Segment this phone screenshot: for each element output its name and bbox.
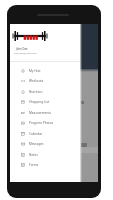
- button[interactable]: Messages: [10, 139, 80, 149]
- staticText: Forms: [29, 163, 39, 167]
- staticText: Measurements: [29, 111, 52, 115]
- button[interactable]: Measurements: [10, 108, 80, 118]
- button[interactable]: Shopping List: [10, 97, 80, 107]
- staticText: Notes: [29, 153, 38, 157]
- staticText: Messages: [29, 142, 44, 146]
- button[interactable]: Forms: [10, 160, 80, 170]
- button[interactable]: Progress Photos: [10, 118, 80, 128]
- button[interactable]: My Hub: [10, 66, 80, 76]
- button[interactable]: Nutrition: [10, 87, 80, 97]
- staticText: Nutrition: [29, 90, 43, 94]
- button[interactable]: Workouts: [10, 76, 80, 86]
- staticText: My Hub: [29, 69, 41, 73]
- staticText: Calendar: [29, 132, 43, 136]
- button[interactable]: Calendar: [10, 129, 80, 139]
- staticText: Shopping List: [29, 100, 50, 104]
- staticText: john.doe@client.com: [14, 52, 37, 55]
- staticText: Progress Photos: [29, 121, 54, 125]
- staticText: John Doe: [16, 47, 28, 51]
- button[interactable]: Notes: [10, 150, 80, 160]
- staticText: Workouts: [29, 79, 44, 83]
